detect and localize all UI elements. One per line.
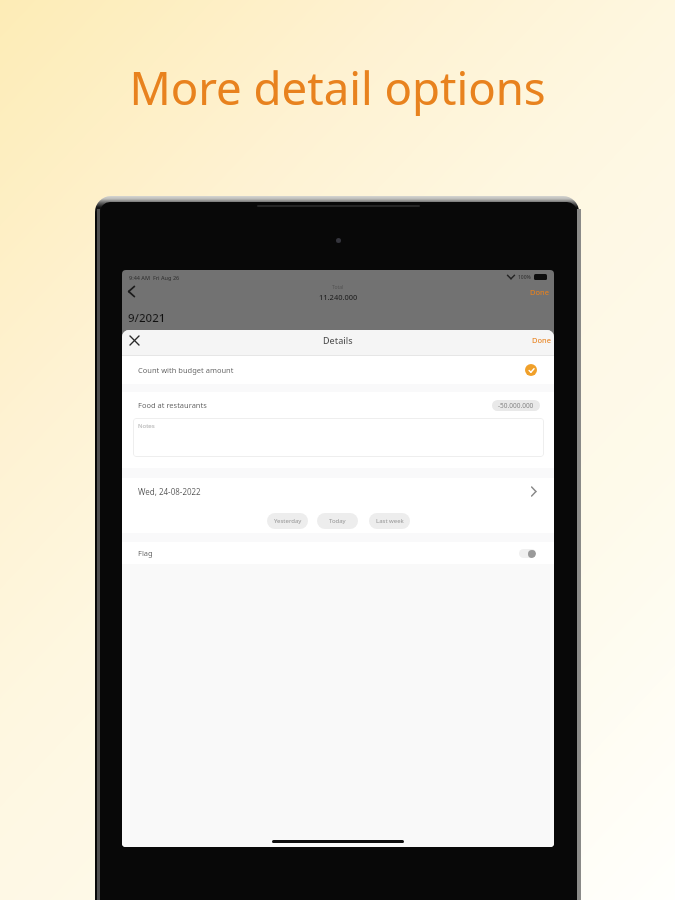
staticText: -50.000.000 bbox=[498, 401, 534, 410]
button[interactable]: Close bbox=[126, 332, 142, 348]
staticText: Notes bbox=[138, 422, 155, 430]
button[interactable]: Count with budget amount bbox=[122, 356, 554, 384]
staticText: 9:44 AM Fri Aug 26 bbox=[129, 274, 180, 281]
staticText: More detail options bbox=[0, 56, 675, 118]
staticText: Last week bbox=[376, 517, 404, 525]
button[interactable]: Done bbox=[525, 284, 554, 300]
staticText: Total bbox=[332, 284, 344, 291]
button[interactable]: Last week bbox=[369, 513, 410, 529]
staticText: Count with budget amount bbox=[138, 365, 234, 375]
button[interactable]: Notes bbox=[133, 418, 544, 457]
staticText: Food at restaurants bbox=[138, 400, 207, 410]
staticText: Flag bbox=[138, 548, 153, 558]
button[interactable]: Back bbox=[124, 284, 139, 299]
button[interactable]: Food at restaurants bbox=[122, 392, 554, 418]
button[interactable]: Today bbox=[317, 513, 358, 529]
button[interactable]: Flag bbox=[122, 542, 554, 564]
staticText: Details bbox=[323, 334, 353, 346]
staticText: 100% bbox=[518, 274, 531, 281]
staticText: Today bbox=[329, 517, 346, 525]
staticText: Done bbox=[530, 287, 549, 297]
staticText: 9/2021 bbox=[128, 310, 166, 326]
staticText: 11.240.000 bbox=[319, 292, 358, 302]
staticText: Wed, 24-08-2022 bbox=[138, 486, 201, 497]
button[interactable]: Done bbox=[528, 332, 554, 348]
staticText: Done bbox=[532, 335, 551, 345]
staticText: Yesterday bbox=[274, 517, 302, 525]
button[interactable]: Yesterday bbox=[267, 513, 308, 529]
button[interactable]: Wed, 24-08-2022 bbox=[122, 478, 554, 504]
